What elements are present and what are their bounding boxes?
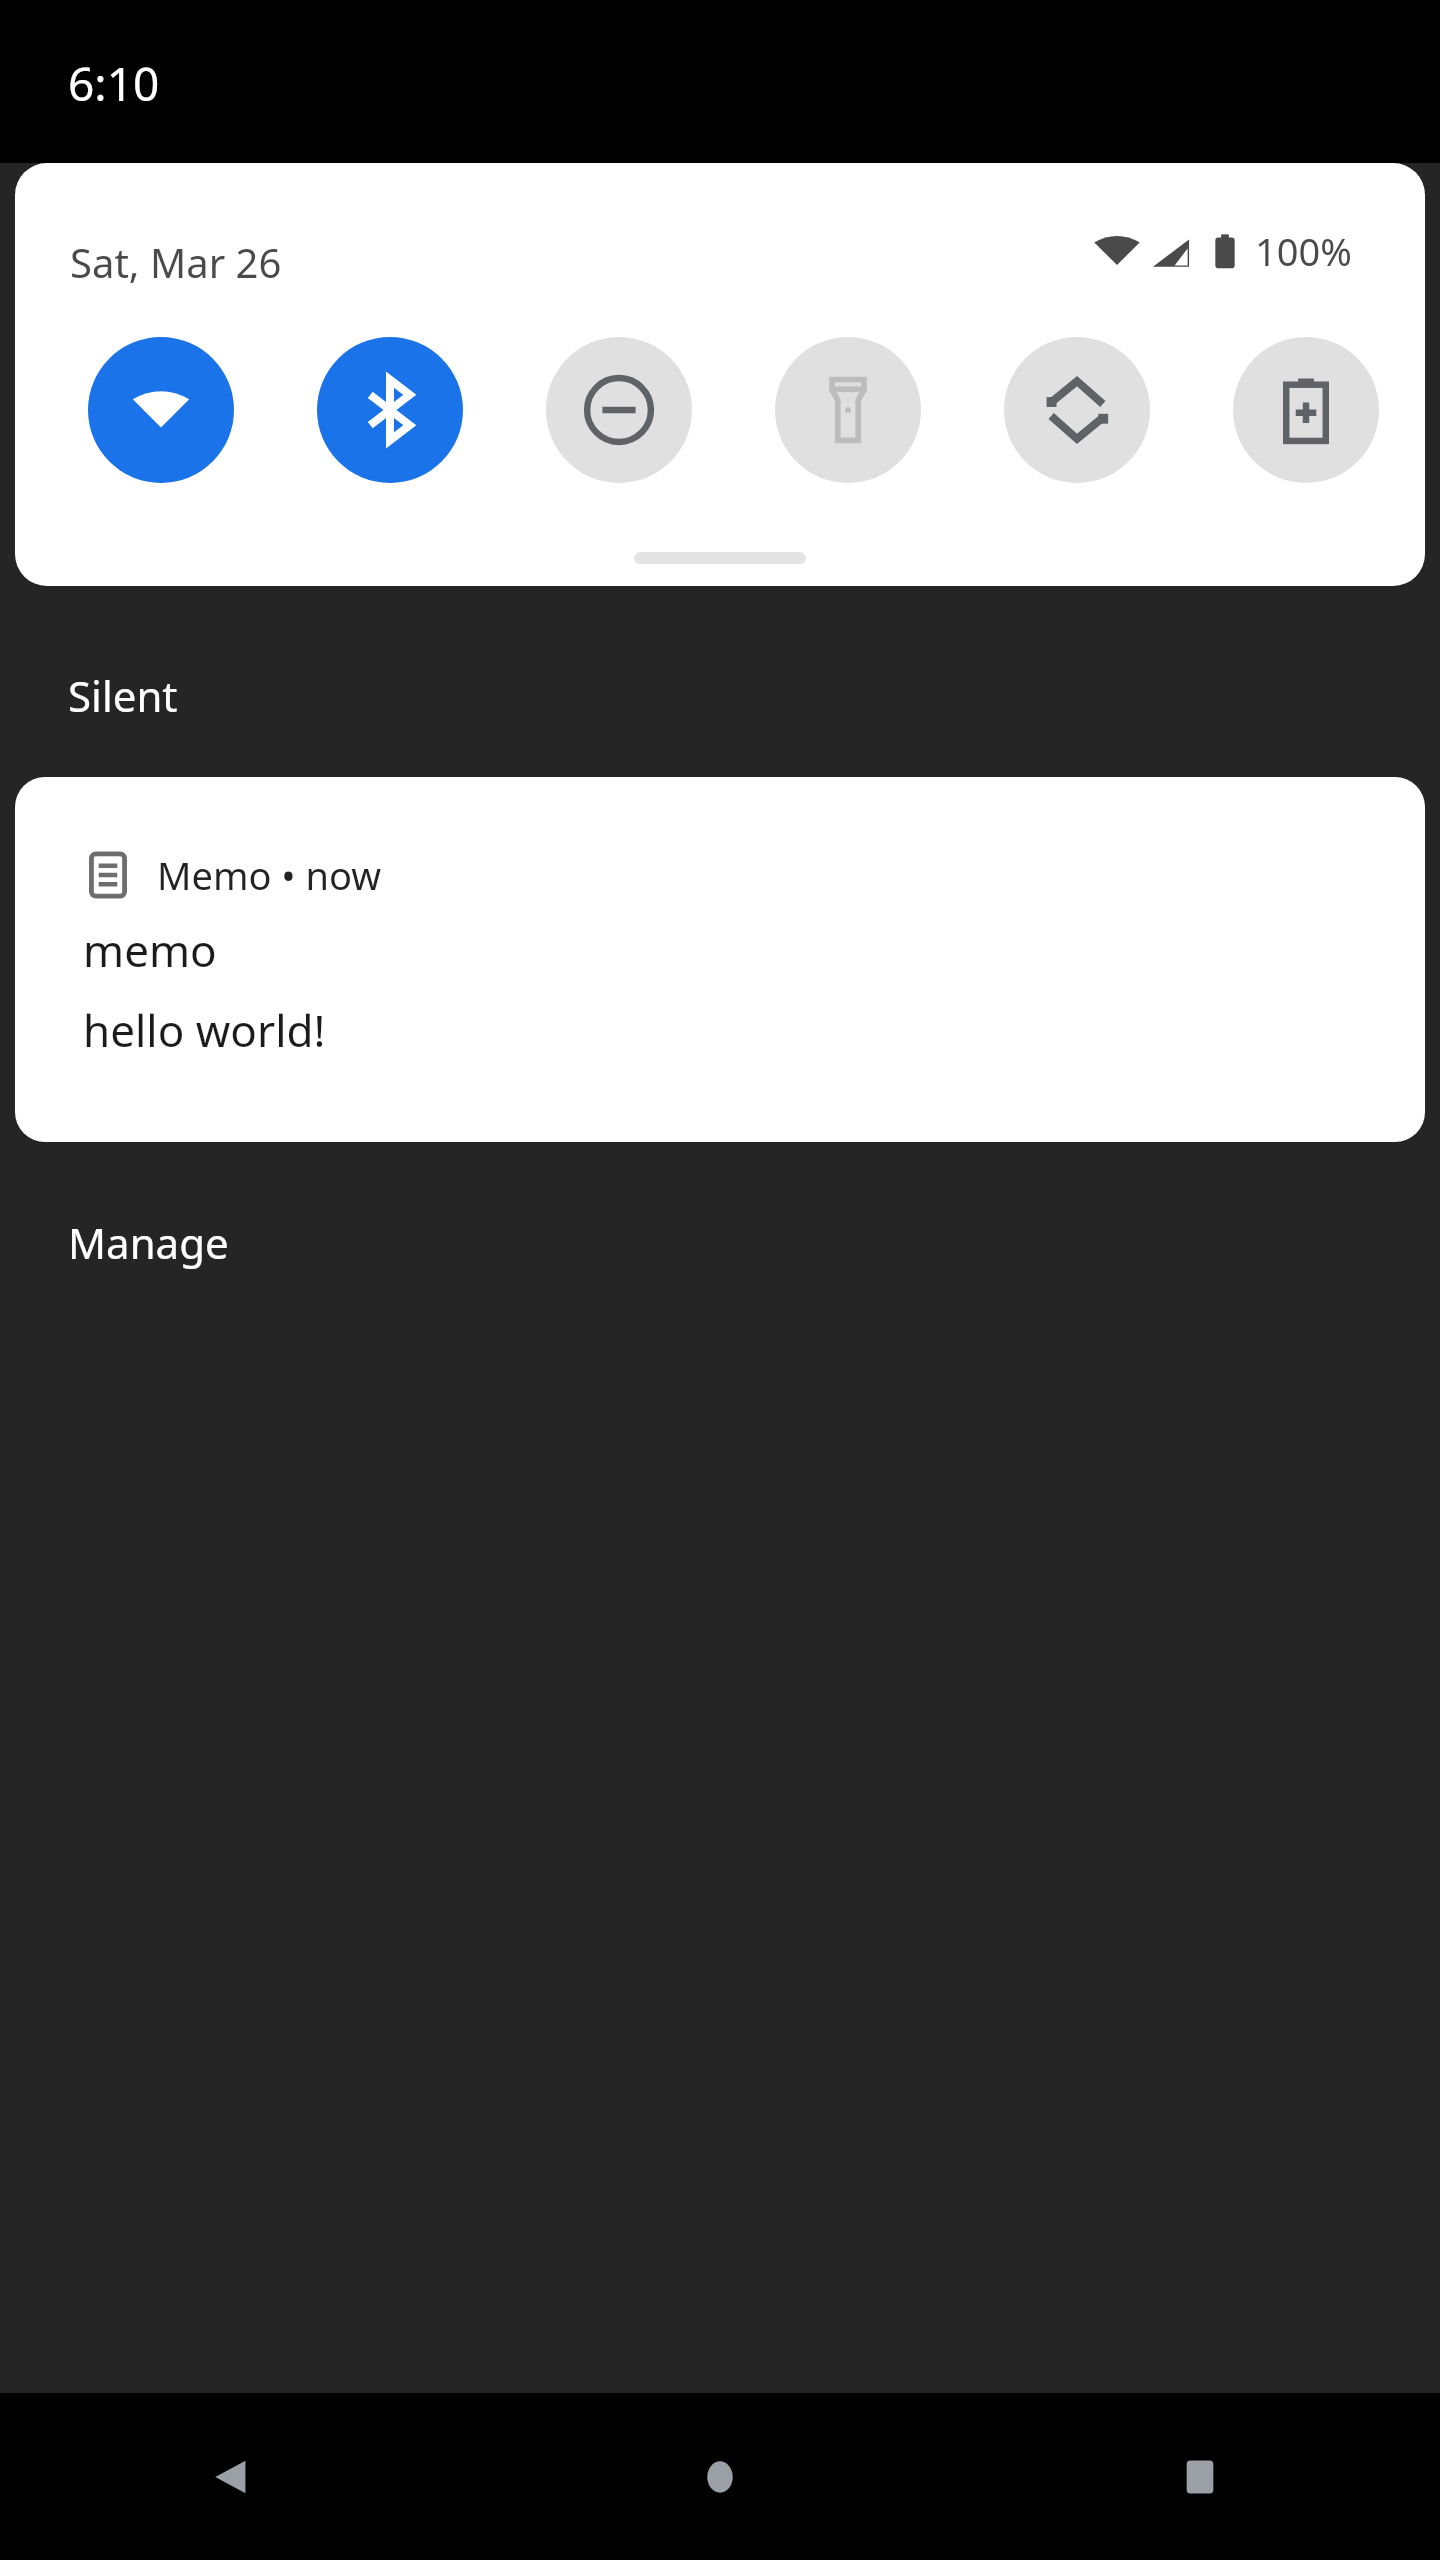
staticText: Sat, Mar 26 [70,235,282,289]
button[interactable]: Recents [960,2393,1440,2560]
staticText: 6:10 [68,52,160,115]
staticText: Silent [68,667,178,724]
button[interactable]: Wi-Fi [88,337,234,483]
staticText: memo [83,920,217,980]
button[interactable]: Battery Saver [1233,337,1379,483]
staticText: Manage [68,1214,229,1271]
button[interactable]: Manage [40,1200,257,1285]
button[interactable]: Auto rotate [1004,337,1150,483]
button[interactable]: Memo • now [15,777,1425,1142]
button[interactable]: Do Not Disturb [546,337,692,483]
staticText: 100% [1255,225,1352,277]
button[interactable]: Home [480,2393,960,2560]
button[interactable]: Back [0,2393,480,2560]
button[interactable]: Bluetooth [317,337,463,483]
staticText: Memo • now [157,849,382,901]
staticText: hello world! [83,1000,326,1060]
button[interactable]: Flashlight [775,337,921,483]
